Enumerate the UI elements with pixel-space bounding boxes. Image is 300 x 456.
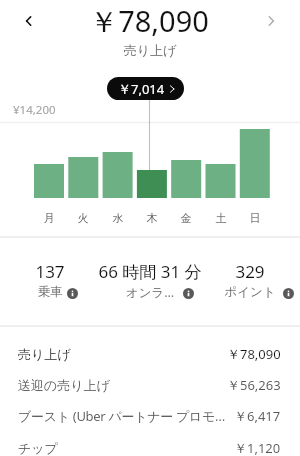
button[interactable]: Previous week [15,7,43,35]
staticText: 売り上げ [0,42,300,58]
staticText: ￥56,263 [227,376,281,394]
staticText: 66 時間 31 分 [90,260,210,283]
button[interactable]: Next week [257,7,285,35]
button[interactable]: 137 [0,258,110,302]
staticText: ￥78,090 [227,345,281,363]
staticText: ポイント [190,284,300,300]
staticText: 売り上げ [18,346,221,362]
staticText: 137 [0,260,110,283]
staticText: ￥7,014 [118,80,165,98]
staticText: 日 [243,211,267,225]
staticText: ￥6,417 [234,407,281,425]
staticText: 金 [174,211,198,225]
staticText: ¥14,200 [13,102,56,118]
staticText: 329 [190,260,300,283]
staticText: チップ [18,440,228,456]
button[interactable]: 送迎の売り上げ [0,370,300,399]
staticText: 水 [106,211,130,225]
button[interactable]: 売り上げ [0,339,300,368]
staticText: ブースト (Uber パートナー プロモ… [18,407,228,425]
staticText: 木 [140,211,164,225]
staticText: 送迎の売り上げ [18,377,221,393]
button[interactable]: 66 時間 31 分 [90,258,210,302]
staticText: ￥1,120 [234,439,281,456]
button[interactable]: チップ [0,433,300,456]
staticText: ￥78,090 [0,1,299,41]
button[interactable]: ブースト (Uber パートナー プロモ… [0,401,300,430]
staticText: 月 [37,211,61,225]
staticText: 土 [209,211,233,225]
button[interactable]: 329 [190,258,300,302]
staticText: 火 [71,211,95,225]
staticText: 乗車 [0,284,110,300]
button[interactable]: ￥7,014 [107,77,184,100]
staticText: オンラ… [90,284,210,301]
